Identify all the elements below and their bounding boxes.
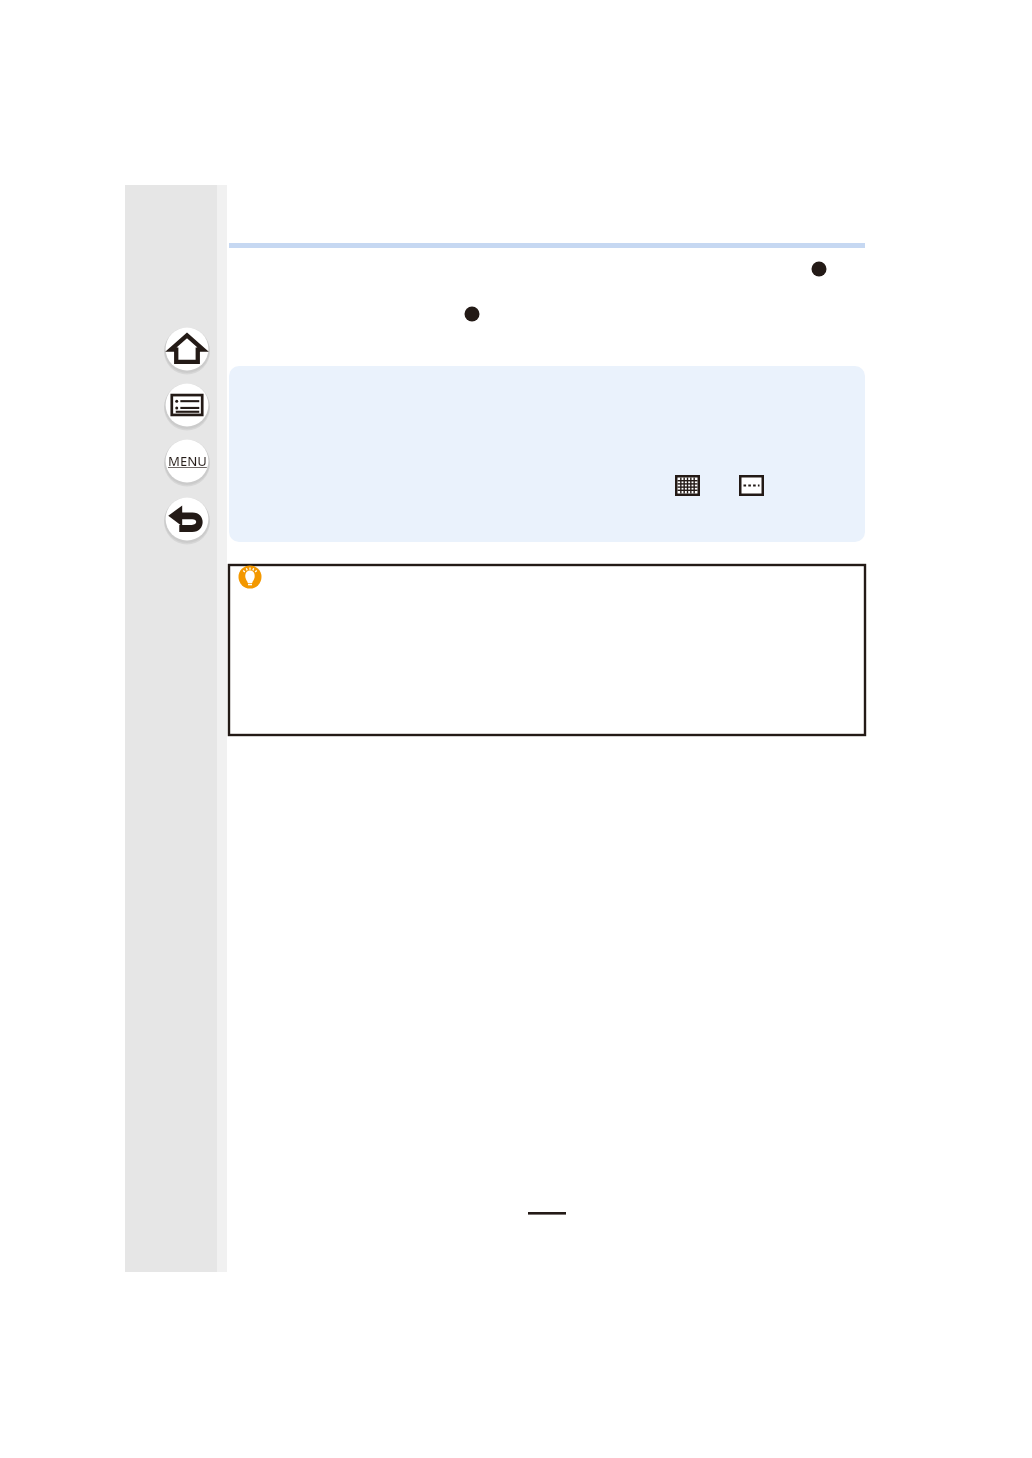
staticText: MENU [168,452,207,470]
button[interactable]: Back [164,496,210,542]
button[interactable]: Home [164,326,210,372]
button[interactable] [229,565,865,735]
button[interactable] [229,366,865,542]
button[interactable]: Display [164,382,210,428]
button[interactable]: MENU [164,438,210,484]
